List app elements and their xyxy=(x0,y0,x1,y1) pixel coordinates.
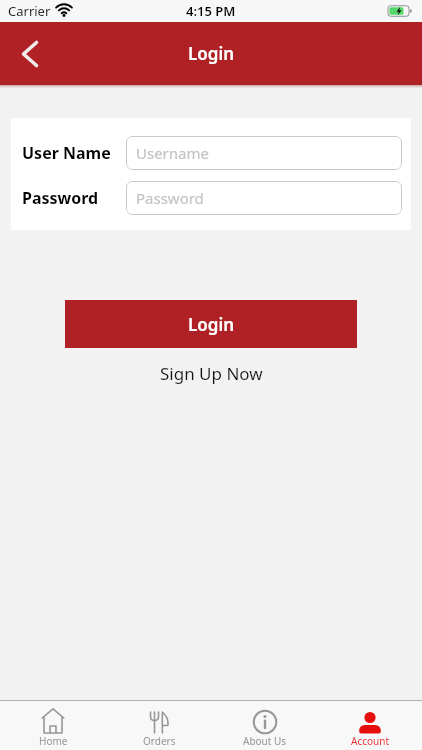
staticText: User Name xyxy=(22,142,111,164)
button[interactable]: Account xyxy=(318,701,422,750)
staticText: 4:15 PM xyxy=(186,2,236,20)
staticText: About Us xyxy=(243,734,287,748)
button[interactable]: Login xyxy=(65,300,357,348)
staticText: Password xyxy=(136,188,204,208)
staticText: Sign Up Now xyxy=(160,362,263,385)
staticText: Login xyxy=(188,313,235,336)
button[interactable]: About Us xyxy=(212,701,318,750)
staticText: Account xyxy=(351,734,390,748)
staticText: Orders xyxy=(143,734,176,748)
staticText: Home xyxy=(39,734,68,748)
staticText: Login xyxy=(188,42,235,65)
button[interactable]: Username xyxy=(126,136,402,170)
staticText: Password xyxy=(22,187,99,209)
button[interactable] xyxy=(10,34,50,74)
staticText: Username xyxy=(136,143,209,163)
staticText: Carrier xyxy=(8,2,51,20)
button[interactable]: Password xyxy=(126,181,402,215)
button[interactable]: Orders xyxy=(106,701,212,750)
button[interactable]: Home xyxy=(0,701,106,750)
button[interactable]: Sign Up Now xyxy=(156,358,267,389)
